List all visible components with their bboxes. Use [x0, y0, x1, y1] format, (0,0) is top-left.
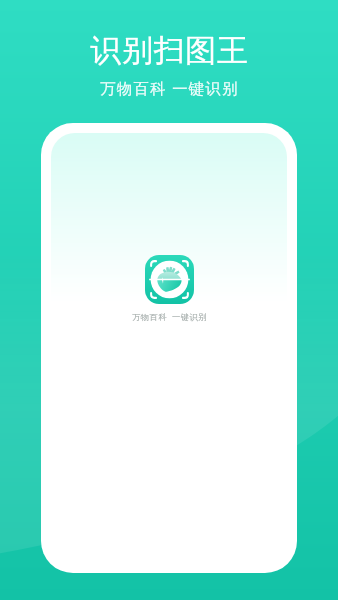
staticText: 万物百科 一键识别: [100, 78, 239, 99]
button[interactable]: 识别扫图王 app icon, tap to start scanning: [145, 255, 194, 304]
staticText: 万物百科 一键识别: [132, 311, 207, 322]
staticText: 识别扫图王: [90, 31, 249, 70]
